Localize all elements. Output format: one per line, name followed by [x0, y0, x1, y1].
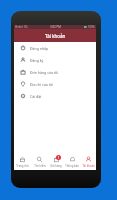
staticText: Đăng ký: [30, 58, 44, 63]
button[interactable]: Tìm kiếm: [31, 154, 48, 168]
button[interactable]: Thông báo: [64, 154, 80, 168]
button[interactable]: Tài khoản: [80, 154, 96, 168]
staticText: Viettel 3G: [15, 25, 28, 29]
staticText: Tài khoản: [82, 164, 95, 168]
staticText: Tài khoản: [45, 33, 66, 39]
staticText: Đăng nhập: [30, 46, 49, 51]
staticText: 100%: [88, 25, 95, 29]
staticText: 1: [58, 156, 60, 160]
staticText: Địa chỉ của tôi: [30, 82, 53, 87]
staticText: 3:02 PM: [50, 25, 61, 29]
staticText: Cài đặt: [30, 94, 42, 99]
staticText: Giỏ hàng: [50, 164, 62, 168]
button[interactable]: Trang chủ: [14, 154, 31, 168]
staticText: Thông báo: [65, 164, 79, 168]
staticText: Tìm kiếm: [34, 164, 46, 168]
button[interactable]: Đăng nhập: [14, 42, 96, 54]
button[interactable]: Cài đặt: [14, 90, 96, 102]
button[interactable]: Đơn hàng của tôi: [14, 66, 96, 78]
staticText: Trang chủ: [16, 164, 29, 168]
button[interactable]: Địa chỉ của tôi: [14, 78, 96, 90]
staticText: Đơn hàng của tôi: [30, 70, 59, 75]
button[interactable]: 1: [48, 154, 64, 168]
button[interactable]: Đăng ký: [14, 54, 96, 66]
